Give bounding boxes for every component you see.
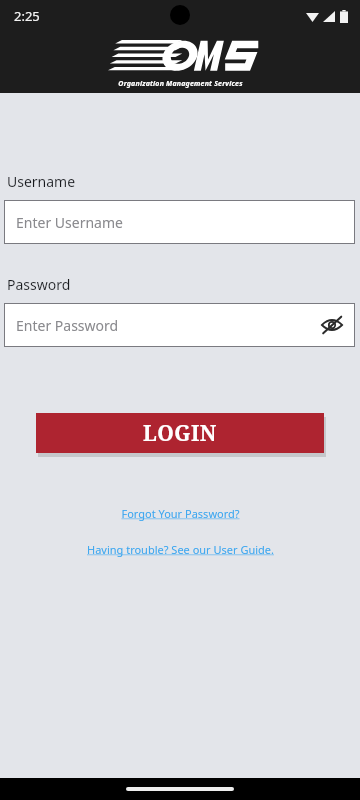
button[interactable]: Show password [319,312,345,338]
staticText: 2:25 [14,7,40,25]
staticText: Username [7,172,76,191]
button[interactable]: Enter Password [4,303,355,347]
button[interactable]: Enter Username [4,200,355,244]
staticText: Enter Password [16,316,119,335]
button[interactable]: LOGIN [36,413,324,453]
button[interactable]: Having trouble? See our User Guide. [81,536,280,563]
staticText: LOGIN [143,419,217,448]
staticText: Password [7,275,71,294]
staticText: Organization Management Services [118,79,243,89]
button[interactable]: Forgot Your Password? [115,500,246,527]
staticText: Enter Username [16,213,123,232]
